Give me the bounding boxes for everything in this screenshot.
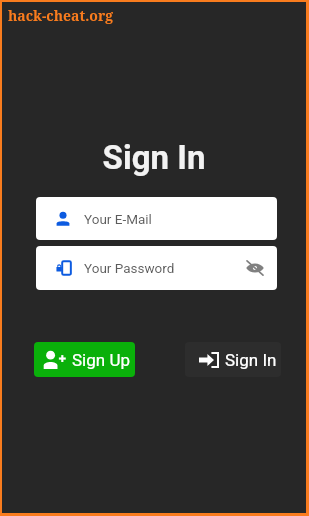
button[interactable]: Your E-Mail	[36, 197, 277, 240]
staticText: Sign In	[2, 138, 306, 177]
staticText: Sign In	[225, 350, 277, 370]
button[interactable]: Sign Up	[34, 342, 135, 377]
staticText: Sign Up	[72, 350, 130, 370]
staticText: Your Password	[84, 260, 175, 276]
button[interactable]: Show password	[243, 256, 267, 280]
button[interactable]: Sign In	[185, 342, 281, 377]
staticText: Your E-Mail	[84, 211, 152, 227]
button[interactable]: Your Password	[36, 246, 277, 290]
staticText: hack-cheat.org	[8, 6, 114, 25]
